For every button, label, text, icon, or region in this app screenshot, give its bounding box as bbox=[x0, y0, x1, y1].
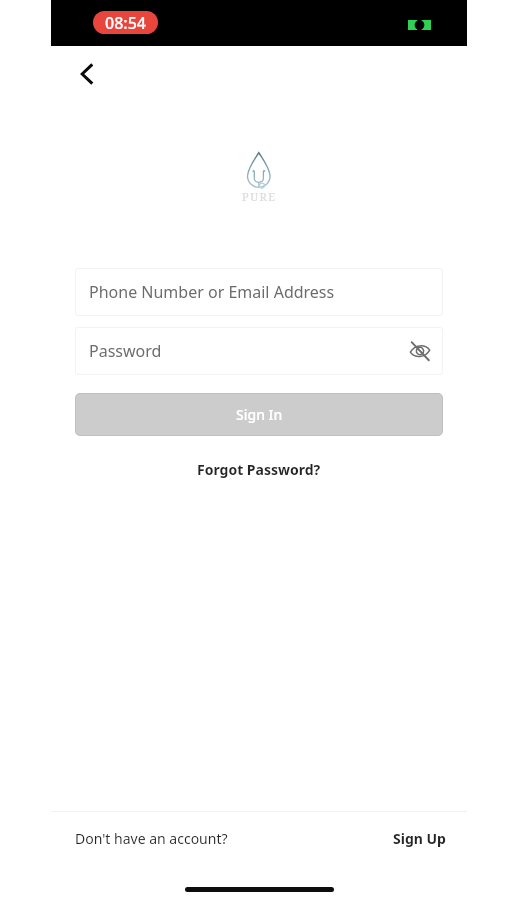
staticText: Password bbox=[89, 340, 162, 362]
button[interactable]: Password bbox=[75, 327, 443, 375]
staticText: 08:54 bbox=[105, 12, 146, 34]
button[interactable]: Show password bbox=[406, 337, 434, 365]
button[interactable]: Phone Number or Email Address bbox=[75, 268, 443, 316]
button[interactable]: Back bbox=[69, 56, 105, 92]
staticText: Phone Number or Email Address bbox=[89, 281, 335, 303]
staticText: PURE bbox=[242, 189, 277, 204]
button[interactable]: Sign Up bbox=[393, 829, 446, 848]
button[interactable]: Forgot Password? bbox=[193, 456, 325, 483]
button[interactable]: Sign In bbox=[75, 393, 443, 436]
button[interactable]: Don't have an account? bbox=[75, 829, 228, 848]
staticText: Sign In bbox=[236, 405, 283, 424]
